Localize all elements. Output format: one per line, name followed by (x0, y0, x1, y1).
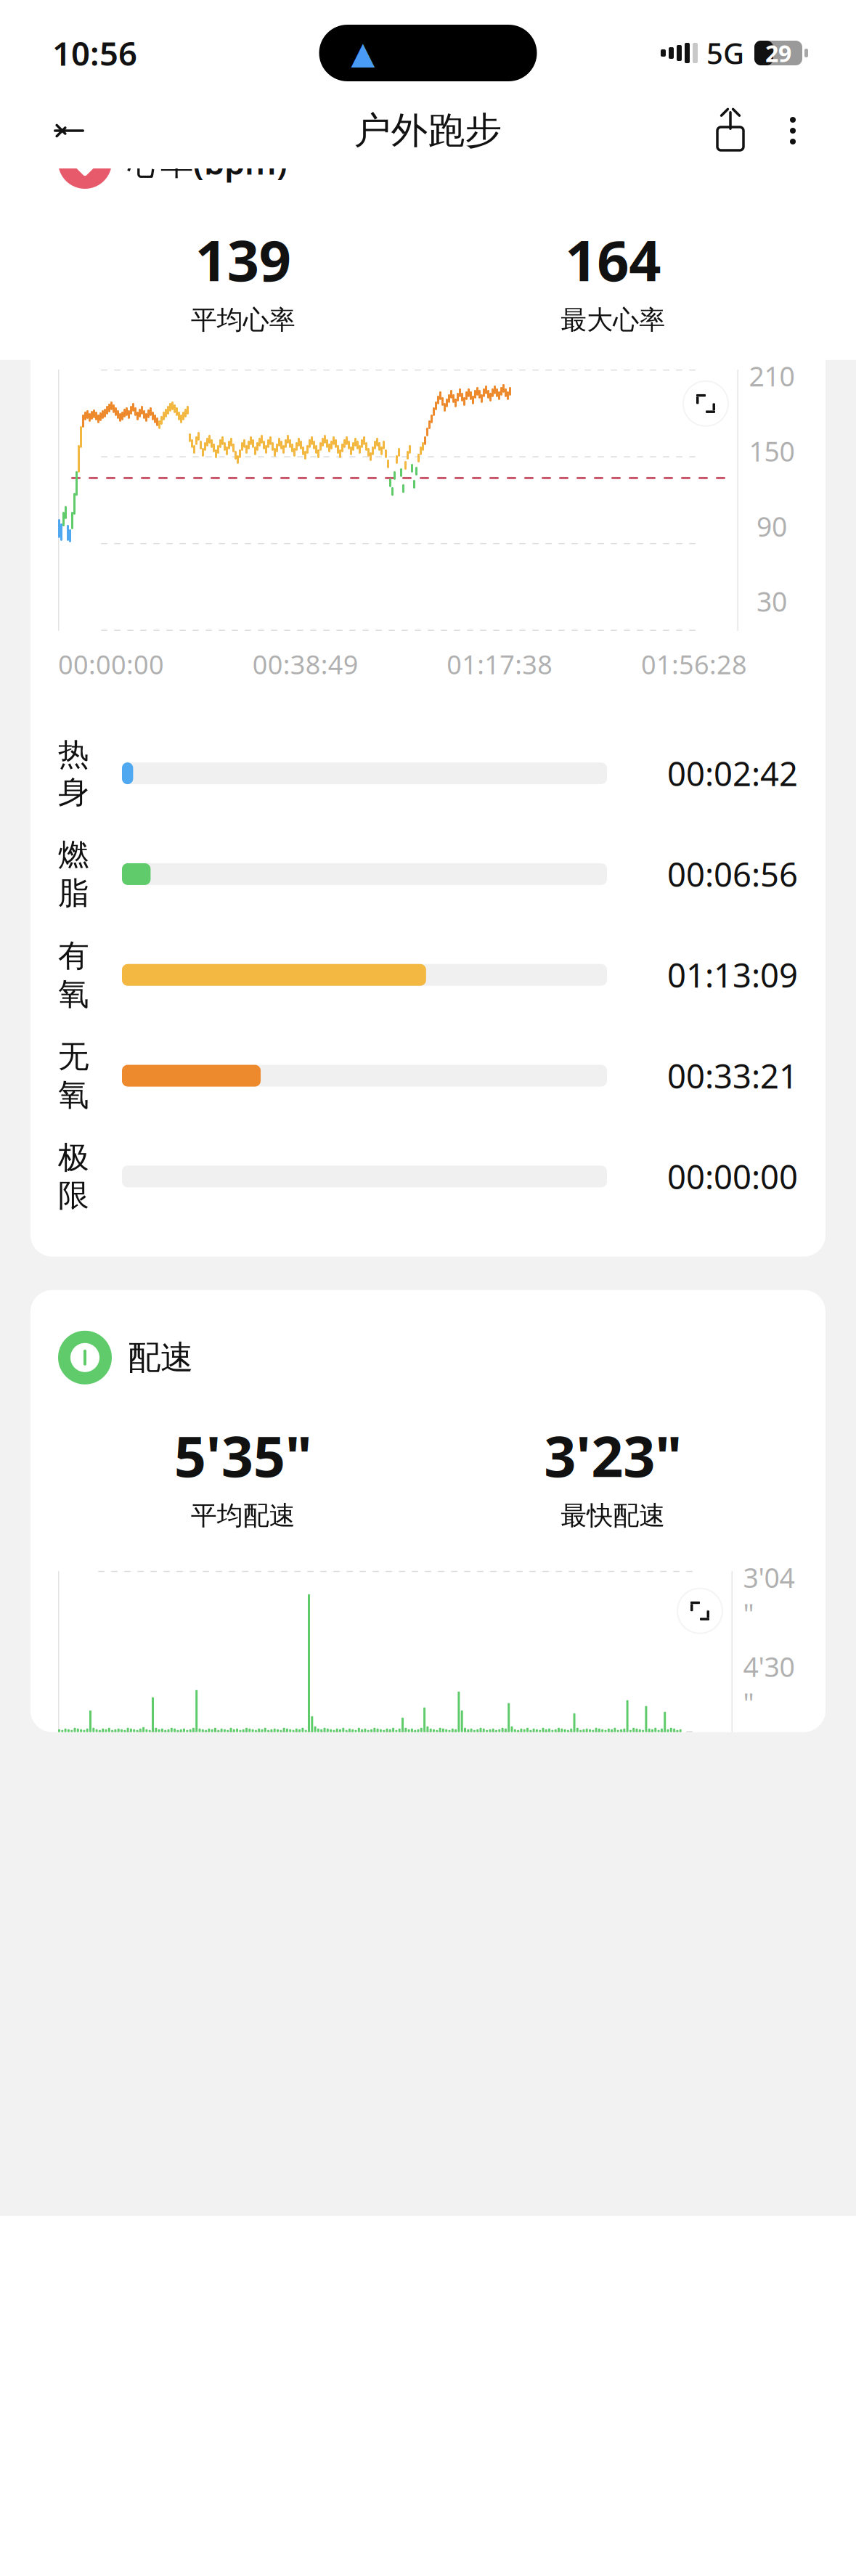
staticText: 00:38:49 (252, 647, 358, 682)
button[interactable]: Expand chart (677, 1588, 722, 1633)
staticText: 有氧 (58, 937, 89, 1013)
staticText: 配速 (128, 1337, 193, 1378)
staticText: 平均配速 (191, 1500, 295, 1532)
staticText: 极限 (58, 1138, 89, 1215)
staticText: 00:06:56 (667, 852, 798, 896)
staticText: 139 (195, 222, 291, 297)
staticText: 热身 (58, 735, 89, 811)
staticText: 4'30" (743, 1648, 795, 1721)
staticText: 90 (757, 508, 787, 544)
staticText: 平均心率 (191, 304, 295, 336)
button[interactable]: Share (699, 99, 762, 162)
staticText: 最快配速 (561, 1500, 665, 1532)
staticText: 00:02:42 (667, 751, 798, 795)
staticText: 燃脂 (58, 836, 89, 912)
staticText: 01:17:38 (447, 647, 553, 682)
staticText: 3'04" (743, 1559, 795, 1631)
staticText: 30 (757, 583, 787, 619)
staticText: 10:56 (52, 31, 137, 75)
staticText: ▲ (351, 35, 375, 71)
staticText: 3'23" (544, 1418, 682, 1492)
staticText: 29 (765, 38, 791, 68)
staticText: 户外跑步 (354, 108, 502, 153)
staticText: 5'35" (174, 1418, 312, 1492)
staticText: 164 (565, 222, 661, 297)
staticText: 01:13:09 (667, 953, 798, 997)
staticText: 00:00:00 (667, 1155, 798, 1198)
button[interactable]: Back (38, 99, 100, 162)
staticText: 无氧 (58, 1038, 89, 1114)
staticText: 最大心率 (561, 304, 665, 336)
button[interactable]: Expand chart (683, 381, 728, 426)
staticText: 150 (749, 433, 795, 469)
staticText: 210 (749, 358, 795, 394)
button[interactable]: More options (762, 99, 824, 162)
staticText: 00:00:00 (58, 647, 164, 682)
staticText: 心率(bpm) (128, 140, 288, 184)
staticText: 5G (706, 34, 744, 72)
staticText: 00:33:21 (667, 1054, 798, 1098)
staticText: 01:56:28 (641, 647, 747, 682)
